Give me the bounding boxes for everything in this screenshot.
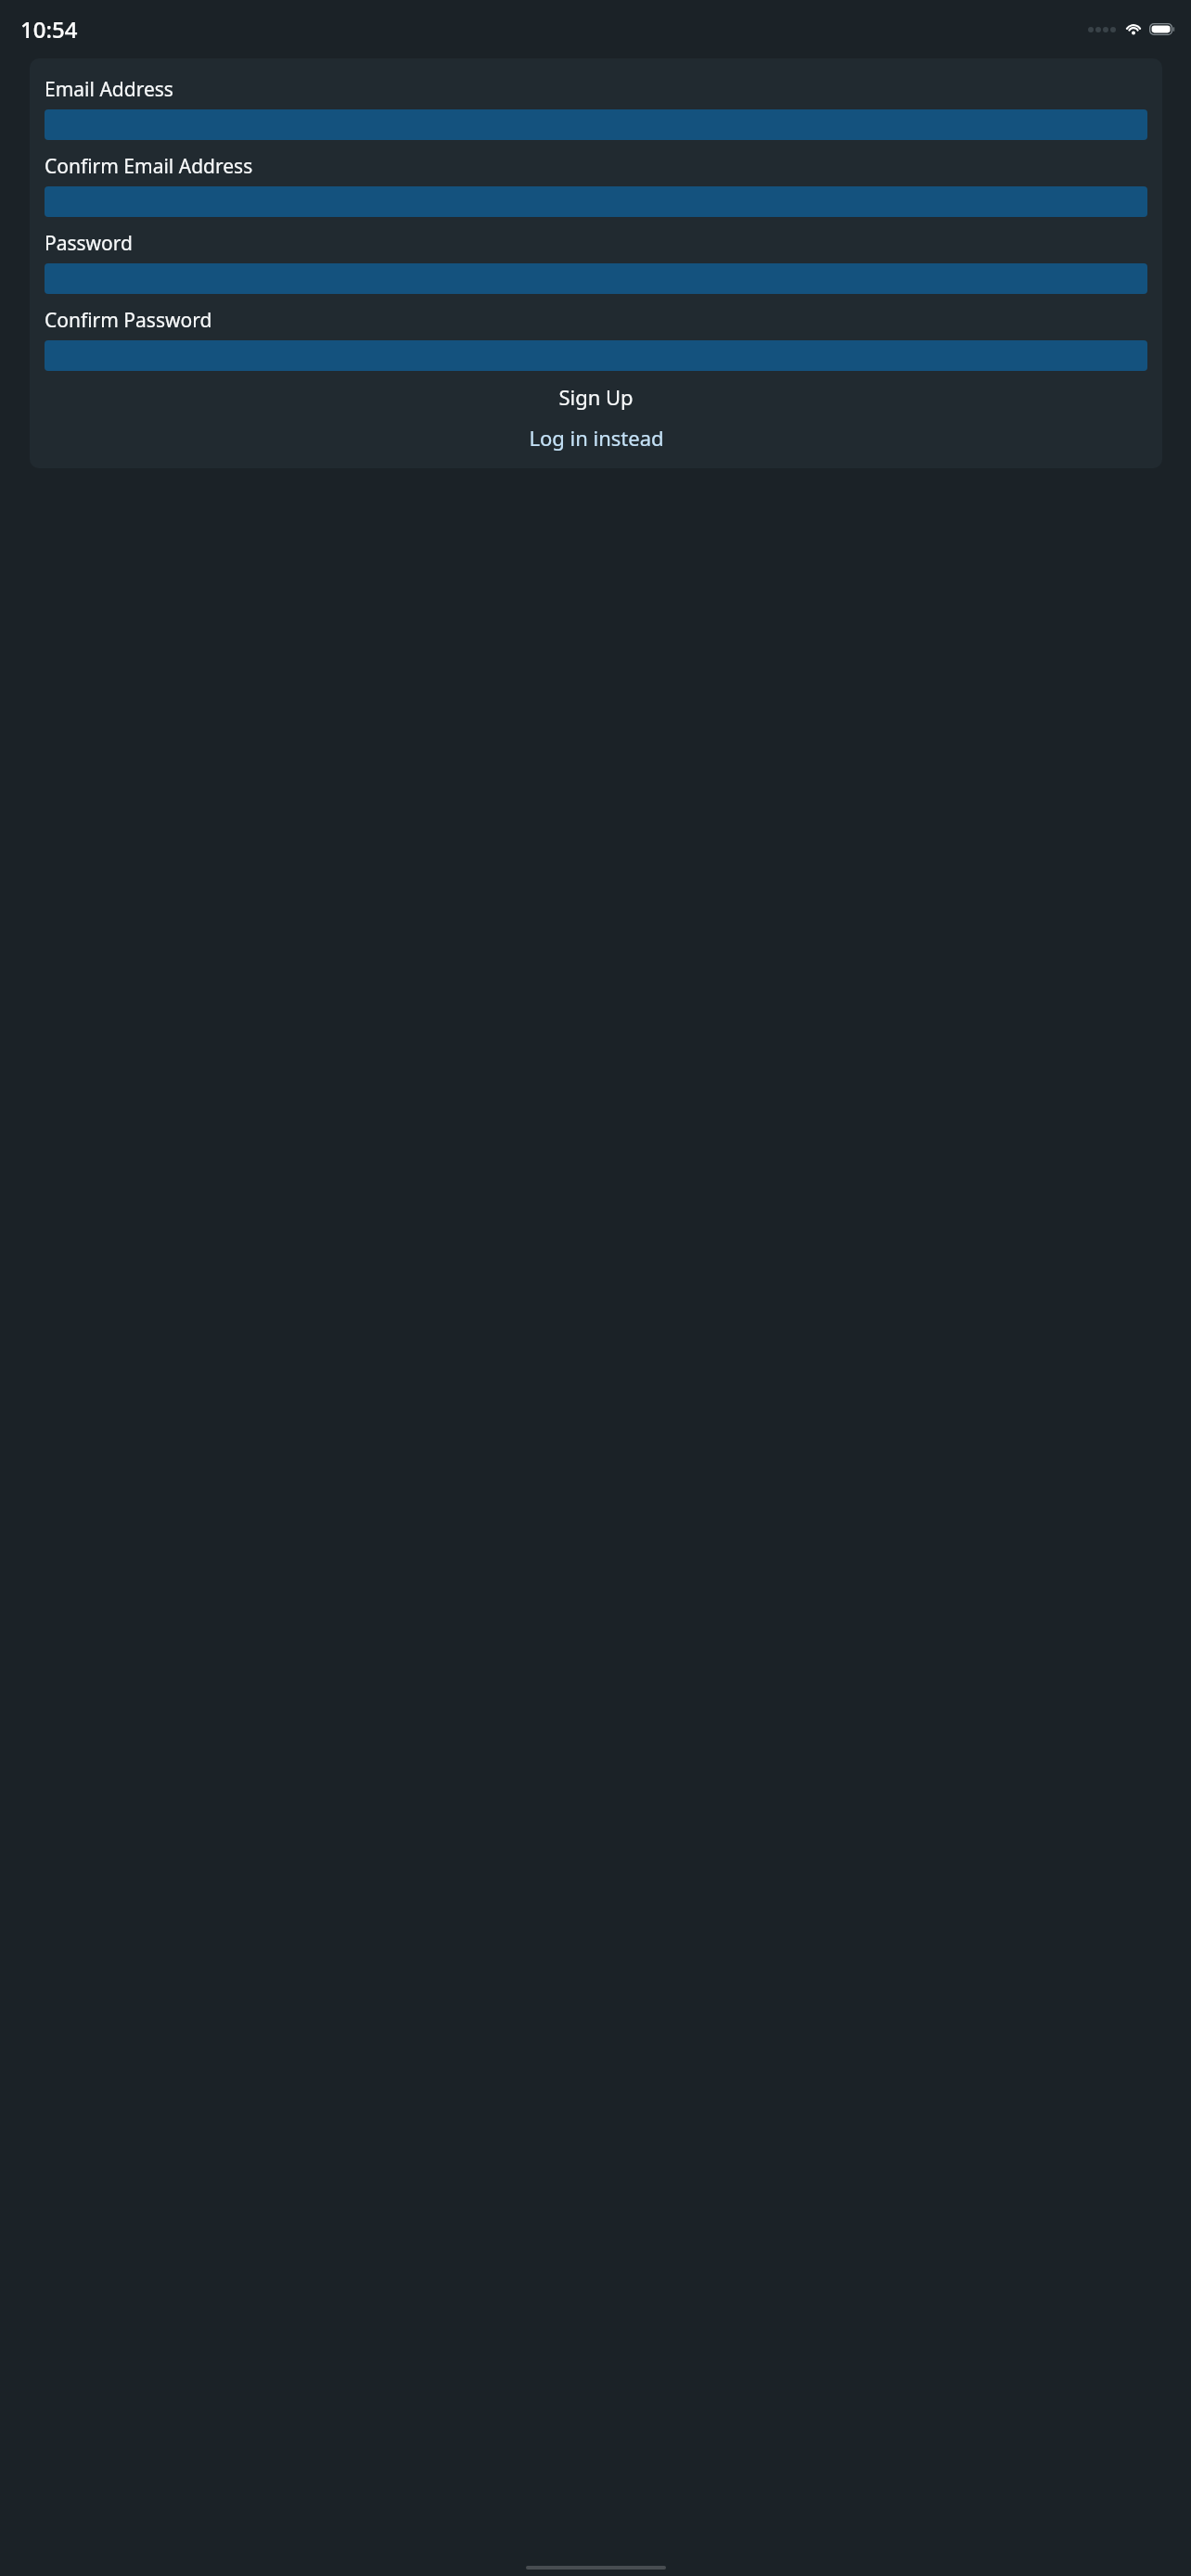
staticText: Email Address [45, 76, 173, 103]
button[interactable]: Password [45, 263, 1147, 294]
staticText: Sign Up [558, 383, 634, 411]
staticText: Log in instead [529, 424, 664, 452]
staticText: Confirm Email Address [45, 153, 253, 180]
staticText: Confirm Password [45, 307, 212, 334]
button[interactable]: Confirm Password [45, 340, 1147, 371]
staticText: Password [45, 230, 133, 257]
button[interactable]: Confirm Email Address [45, 186, 1147, 217]
other: Wi-Fi signal [1125, 23, 1142, 35]
button[interactable]: Log in instead [45, 419, 1147, 456]
button[interactable]: Email Address [45, 109, 1147, 140]
staticText: 10:54 [20, 14, 78, 45]
other: Battery full [1149, 23, 1175, 35]
button[interactable]: Sign Up [45, 378, 1147, 415]
